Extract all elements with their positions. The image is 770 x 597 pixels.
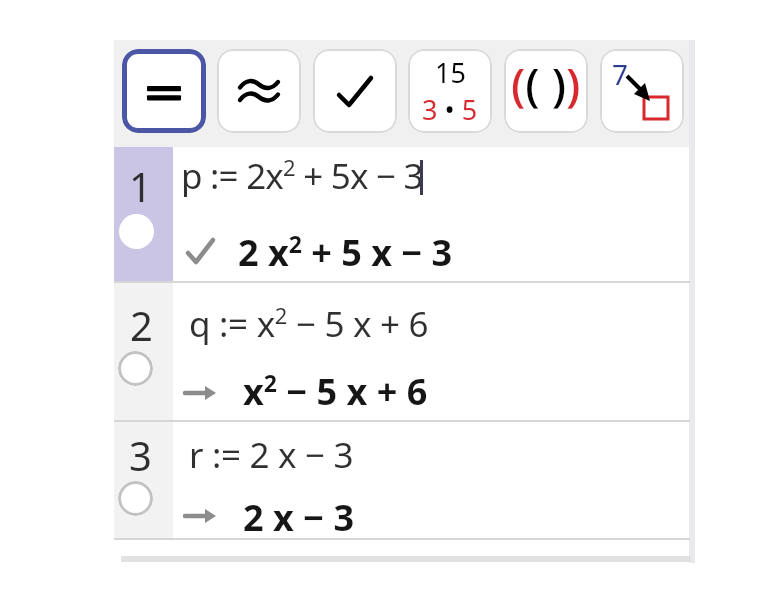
button[interactable] bbox=[114, 421, 173, 539]
staticText: (( )) bbox=[511, 53, 581, 116]
button[interactable] bbox=[122, 49, 206, 133]
staticText: 3 bbox=[129, 428, 152, 482]
staticText: 2 bbox=[130, 298, 153, 352]
staticText: 1 bbox=[129, 159, 152, 213]
button[interactable]: (( )) bbox=[504, 49, 588, 133]
button[interactable] bbox=[118, 351, 153, 386]
staticText: x2 − 5 x + 6 bbox=[243, 367, 428, 416]
button[interactable] bbox=[118, 481, 153, 516]
staticText: r := 2 x − 3 bbox=[189, 431, 354, 479]
button[interactable]: 7 bbox=[600, 49, 684, 133]
staticText: 7 bbox=[612, 55, 629, 93]
button[interactable]: 15 bbox=[408, 49, 492, 133]
staticText: 2 x2 + 5 x − 3 bbox=[238, 228, 453, 277]
button[interactable] bbox=[313, 49, 397, 133]
staticText: 2 x − 3 bbox=[243, 493, 354, 542]
button[interactable] bbox=[217, 49, 301, 133]
button[interactable] bbox=[114, 147, 173, 281]
staticText: p := 2x2 + 5x − 3 bbox=[181, 152, 423, 200]
button[interactable] bbox=[119, 214, 154, 249]
button[interactable] bbox=[114, 282, 173, 420]
staticText: 15 bbox=[435, 54, 466, 91]
staticText: q := x2 − 5 x + 6 bbox=[189, 300, 429, 348]
staticText: 3 • 5 bbox=[422, 91, 478, 128]
